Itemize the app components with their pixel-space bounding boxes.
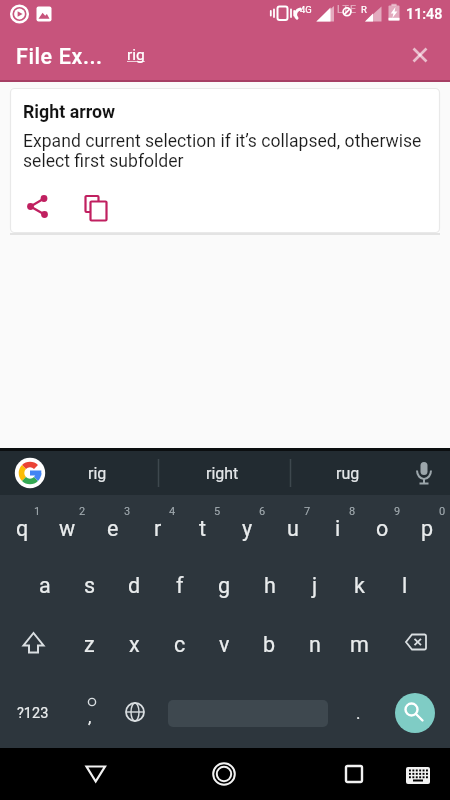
staticText: w [59,516,76,541]
staticText: 8 [349,505,356,518]
button[interactable] [12,624,56,664]
button[interactable]: q [0,508,45,548]
button[interactable]: right [192,461,252,485]
button[interactable] [82,192,112,222]
staticText: 6 [259,505,266,518]
staticText: Right arrow [23,101,116,122]
button[interactable]: m [337,624,382,664]
button[interactable]: u [270,508,315,548]
button[interactable]: l [382,565,427,605]
button[interactable]: i [315,508,360,548]
button[interactable] [0,748,450,800]
staticText: . [356,703,361,723]
button[interactable]: v [202,624,247,664]
staticText: y [242,516,253,541]
staticText: q [16,516,29,541]
staticText: right [206,464,239,483]
staticText: o [376,516,389,541]
button[interactable]: Right arrow [10,88,440,233]
button[interactable]: rig [127,44,187,66]
button[interactable]: z [67,624,112,664]
staticText: e [107,516,119,541]
button[interactable]: j [292,565,337,605]
button[interactable]: n [292,624,337,664]
button[interactable] [404,40,436,70]
staticText: LTE [337,3,358,15]
button[interactable]: t [180,508,225,548]
button[interactable]: . [348,698,368,728]
button[interactable]: e [90,508,135,548]
staticText: r [154,516,162,541]
button[interactable] [12,456,48,490]
staticText: m [350,632,369,657]
button[interactable]: , [80,702,100,732]
staticText: c [174,632,186,657]
button[interactable]: k [337,565,382,605]
button[interactable]: b [247,624,292,664]
button[interactable]: rig [67,461,127,485]
staticText: , [88,707,92,727]
staticText: File Ex... [16,44,103,69]
staticText: rig [88,464,107,483]
button[interactable]: x [112,624,157,664]
staticText: 4G [300,4,312,15]
button[interactable]: a [22,565,67,605]
staticText: s [84,573,96,598]
staticText: 0 [439,505,446,518]
button[interactable]: r [135,508,180,548]
button[interactable]: g [202,565,247,605]
staticText: j [312,573,318,598]
button[interactable]: d [112,565,157,605]
staticText: x [129,632,140,657]
staticText: h [264,573,276,598]
button[interactable]: s [67,565,112,605]
staticText: 9 [394,505,401,518]
button[interactable] [76,756,116,792]
staticText: rig [127,46,145,64]
staticText: a [39,573,51,598]
button[interactable] [24,192,54,222]
staticText: 7 [304,505,311,518]
staticText: l [402,573,408,598]
button[interactable]: ?123 [10,698,56,728]
staticText: 1 [34,505,41,518]
staticText: 11:48 [406,6,443,23]
staticText: z [84,632,95,657]
staticText: rug [336,464,360,483]
staticText: 4 [169,505,176,518]
staticText: v [219,632,230,657]
button[interactable] [118,696,152,732]
button[interactable] [408,456,440,490]
staticText: 2 [79,505,86,518]
staticText: 5 [214,505,221,518]
button[interactable]: f [157,565,202,605]
staticText: t [199,516,207,541]
button[interactable]: rug [318,461,378,485]
button[interactable]: o [360,508,405,548]
staticText: 3 [124,505,131,518]
staticText: n [309,632,321,657]
button[interactable]: w [45,508,90,548]
staticText: R [361,4,367,15]
button[interactable] [334,756,374,792]
staticText: b [263,632,276,657]
button[interactable]: p [405,508,450,548]
staticText: g [218,573,231,598]
button[interactable]: h [247,565,292,605]
staticText: ?123 [17,705,49,722]
staticText: f [176,573,184,598]
staticText: p [421,516,434,541]
button[interactable]: c [157,624,202,664]
button[interactable] [204,756,244,792]
staticText: u [287,516,299,541]
staticText: k [354,573,365,598]
button[interactable]: y [225,508,270,548]
staticText: d [128,573,141,598]
staticText: i [335,516,341,541]
button[interactable] [402,758,434,790]
button[interactable] [395,693,435,733]
button[interactable] [394,624,438,664]
staticText: Expand current selection if it’s collaps… [23,131,422,171]
